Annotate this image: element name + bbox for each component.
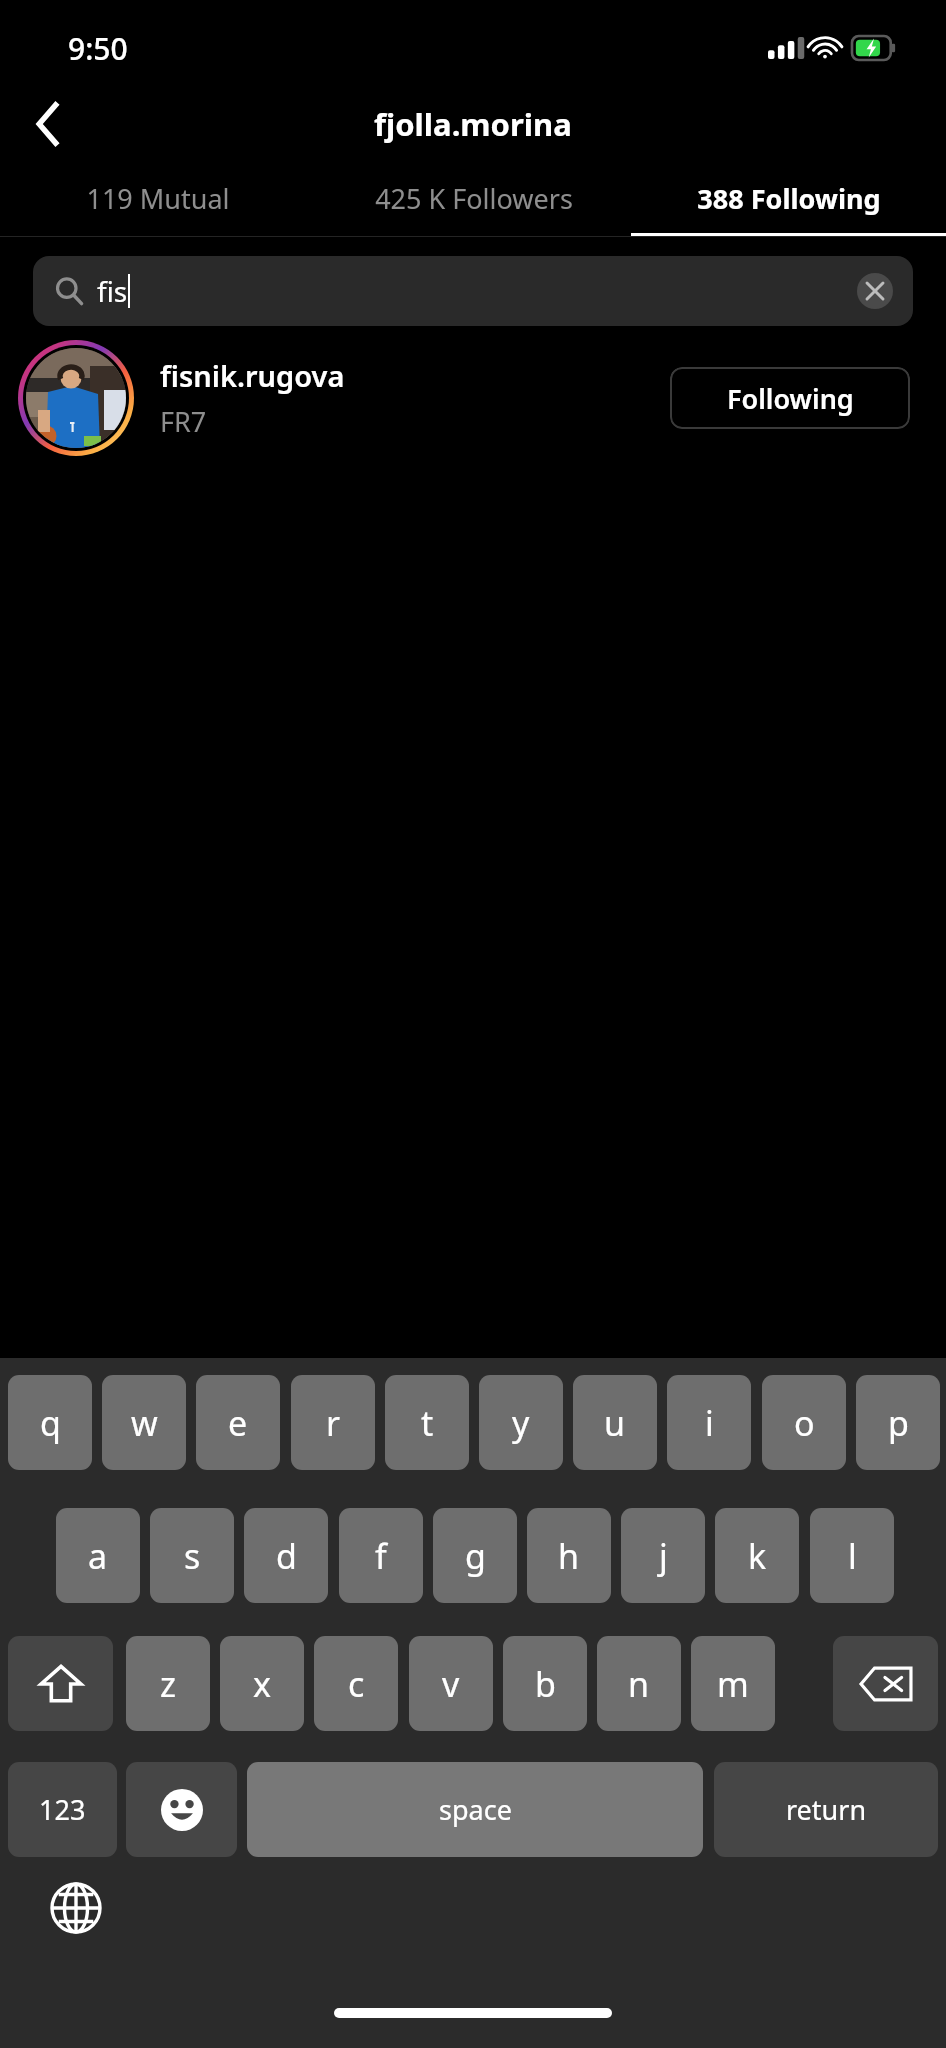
button[interactable]: a [56,1508,140,1603]
button[interactable]: 388 Following [631,160,946,236]
staticText: h [558,1533,580,1579]
staticText: g [465,1533,486,1579]
staticText: u [604,1400,626,1446]
staticText: FR7 [160,403,207,440]
staticText: 388 Following [697,180,881,217]
button[interactable]: Change keyboard [48,1880,104,1936]
staticText: n [628,1661,650,1707]
staticText: s [184,1533,201,1579]
button[interactable]: q [8,1375,92,1470]
button[interactable]: e [196,1375,280,1470]
staticText: return [786,1791,867,1828]
staticText: r [326,1400,341,1446]
staticText: Following [727,380,854,417]
button[interactable]: fis [33,256,913,326]
staticText: j [659,1533,668,1579]
button[interactable]: h [527,1508,611,1603]
button[interactable]: fisnik.rugova [0,338,946,458]
button[interactable]: s [150,1508,234,1603]
button[interactable]: 425 K Followers [316,160,631,236]
button[interactable]: y [479,1375,563,1470]
button[interactable]: z [126,1636,210,1731]
staticText: w [131,1400,158,1446]
staticText: y [512,1400,530,1446]
button[interactable]: n [597,1636,681,1731]
button[interactable]: Backspace [833,1636,938,1731]
button[interactable]: b [503,1636,587,1731]
button[interactable]: r [291,1375,375,1470]
button[interactable]: f [339,1508,423,1603]
staticText: fjolla.morina [374,103,572,145]
staticText: 9:50 [68,28,128,69]
staticText: c [348,1661,365,1707]
button[interactable]: Clear search [857,273,893,309]
button[interactable]: x [220,1636,304,1731]
button[interactable]: k [715,1508,799,1603]
button[interactable]: Back [18,94,78,154]
staticText: z [160,1661,176,1707]
button[interactable]: m [691,1636,775,1731]
staticText: p [888,1400,909,1446]
staticText: d [276,1533,297,1579]
staticText: b [535,1661,556,1707]
staticText: 123 [39,1791,86,1828]
button[interactable]: l [810,1508,894,1603]
button[interactable]: o [762,1375,846,1470]
button[interactable]: j [621,1508,705,1603]
staticText: space [439,1791,512,1828]
button[interactable]: c [314,1636,398,1731]
staticText: f [375,1533,387,1579]
staticText: m [717,1661,749,1707]
staticText: a [88,1533,108,1579]
staticText: e [228,1400,248,1446]
button[interactable]: v [409,1636,493,1731]
button[interactable]: Following [670,367,910,429]
staticText: 425 K Followers [375,180,573,217]
button[interactable]: Emoji [126,1762,237,1857]
button[interactable]: space [247,1762,703,1857]
staticText: v [442,1661,460,1707]
staticText: fis [97,272,128,310]
button[interactable]: 123 [8,1762,117,1857]
staticText: t [421,1400,434,1446]
button[interactable]: Shift [8,1636,113,1731]
button[interactable]: i [667,1375,751,1470]
button[interactable]: g [433,1508,517,1603]
staticText: x [253,1661,271,1707]
button[interactable]: p [856,1375,940,1470]
button[interactable]: d [244,1508,328,1603]
staticText: q [40,1400,61,1446]
staticText: k [748,1533,767,1579]
staticText: l [848,1533,857,1579]
button[interactable]: u [573,1375,657,1470]
staticText: fisnik.rugova [160,356,345,395]
button[interactable]: w [102,1375,186,1470]
staticText: 119 Mutual [86,180,230,217]
staticText: i [705,1400,714,1446]
button[interactable]: 119 Mutual [0,160,316,236]
button[interactable]: return [714,1762,938,1857]
button[interactable]: t [385,1375,469,1470]
staticText: o [794,1400,815,1446]
